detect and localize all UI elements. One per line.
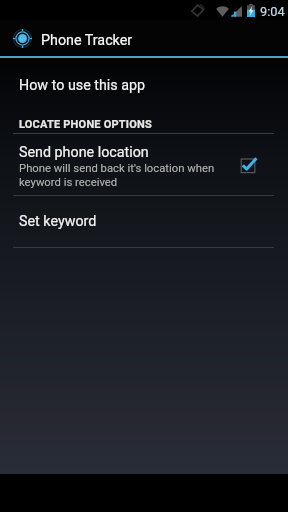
- staticText: 9:04: [260, 4, 285, 19]
- staticText: Send phone location: [19, 144, 149, 161]
- staticText: Set keyword: [19, 213, 97, 230]
- staticText: Phone Tracker: [41, 32, 133, 49]
- staticText: How to use this app: [19, 77, 146, 94]
- button[interactable]: App icon: [0, 20, 288, 56]
- staticText: LOCATE PHONE OPTIONS: [19, 118, 152, 131]
- button[interactable]: Send phone location: [0, 134, 288, 195]
- other: App icon: [13, 29, 32, 48]
- button[interactable]: Send phone location checkbox: [236, 152, 264, 180]
- staticText: Phone will send back it's location when …: [19, 162, 215, 189]
- button[interactable]: How to use this app: [0, 66, 288, 100]
- button[interactable]: Set keyword: [0, 203, 288, 237]
